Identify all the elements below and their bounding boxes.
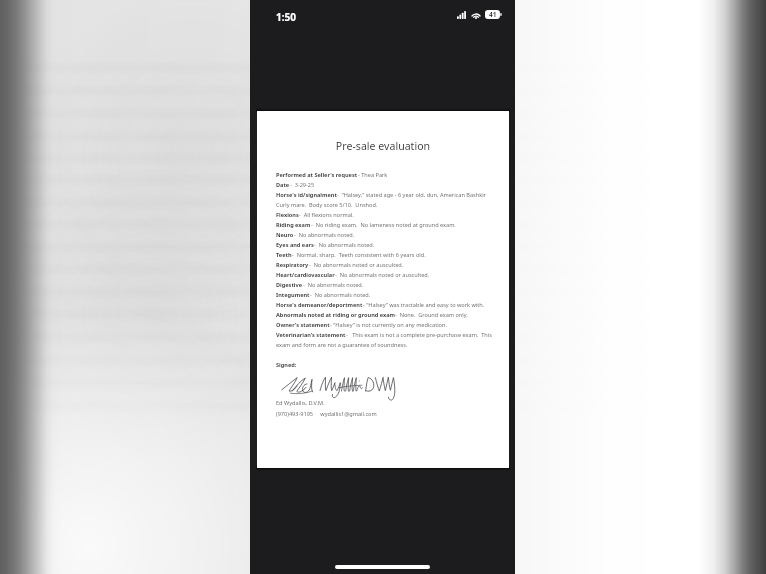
staticText: - No abnormals noted. bbox=[303, 281, 364, 289]
staticText: Pre-sale evaluation bbox=[257, 139, 509, 153]
staticText: - All flexions normal. bbox=[299, 211, 354, 219]
staticText: Abnormals noted at riding or ground exam bbox=[276, 311, 395, 319]
staticText: exam and form are not a guarantee of sou… bbox=[276, 341, 408, 349]
staticText: Curly mare. Body score 5/10. Unshod. bbox=[276, 201, 378, 209]
staticText: Date bbox=[276, 181, 290, 189]
staticText: Flexions bbox=[276, 211, 299, 219]
button[interactable]: Home bbox=[335, 565, 430, 569]
staticText: (970)493-9195 wydallis1@gmail.com bbox=[276, 410, 377, 418]
staticText: - Thea Park bbox=[358, 171, 388, 179]
staticText: Teeth bbox=[276, 251, 292, 259]
staticText: - None. Ground exam only. bbox=[395, 311, 468, 319]
staticText: - No abnormals noted. bbox=[314, 241, 375, 249]
staticText: Integument bbox=[276, 291, 310, 299]
staticText: - No abnormals noted or ausculted. bbox=[335, 271, 430, 279]
staticText: Performed at Seller's request bbox=[276, 171, 358, 179]
staticText: - No riding exam. No lameness noted at g… bbox=[311, 221, 456, 229]
staticText: Veterinarian's statement bbox=[276, 331, 346, 339]
staticText: 1:50 bbox=[276, 10, 296, 24]
staticText: - No abnormals noted. bbox=[294, 231, 355, 239]
staticText: Neuro bbox=[276, 231, 294, 239]
button[interactable]: Pre-sale evaluation document page bbox=[257, 111, 509, 468]
staticText: Respiratory bbox=[276, 261, 309, 269]
button[interactable]: Status: signal, Wi-Fi, battery 41 percen… bbox=[457, 10, 502, 19]
staticText: Signed: bbox=[276, 361, 297, 369]
staticText: Ed Wydallis, D.V.M. bbox=[276, 399, 325, 407]
staticText: Horse's id/signalment bbox=[276, 191, 337, 199]
staticText: Eyes and ears bbox=[276, 241, 314, 249]
staticText: - No abnormals noted. bbox=[310, 291, 371, 299]
staticText: Digestive bbox=[276, 281, 303, 289]
staticText: - “Halsey” was tractable and easy to wor… bbox=[363, 301, 485, 309]
staticText: 41 bbox=[489, 10, 497, 19]
staticText: - No abnormals noted or ausculted. bbox=[309, 261, 404, 269]
staticText: - “Halsey” is not currently on any medic… bbox=[330, 321, 447, 329]
staticText: Horse's demeanor/deportment bbox=[276, 301, 363, 309]
staticText: Heart/cardiovascular bbox=[276, 271, 335, 279]
staticText: - 3-29-25 bbox=[290, 181, 315, 189]
staticText: - This exam is not a complete pre-purcha… bbox=[346, 331, 492, 339]
staticText: Riding exam bbox=[276, 221, 311, 229]
staticText: - “Halsey,” stated age - 6 year old, dun… bbox=[337, 191, 486, 199]
staticText: - Normal, sharp. Teeth consistent with 6… bbox=[292, 251, 426, 259]
staticText: Owner's statement bbox=[276, 321, 330, 329]
